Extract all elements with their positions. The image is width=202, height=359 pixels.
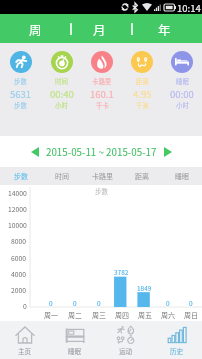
staticText: 0 (23, 301, 27, 311)
staticText: 8000 (11, 236, 27, 246)
staticText: 1849 (137, 283, 152, 292)
button[interactable]: 历史 (151, 321, 202, 359)
staticText: 年 (158, 20, 171, 38)
staticText: 160.1 (90, 87, 114, 101)
staticText: 卡路里 (92, 77, 112, 86)
staticText: 睡眠 (175, 171, 189, 181)
staticText: 6000 (11, 253, 27, 263)
staticText: 小时 (55, 101, 68, 110)
staticText: 10:14 (177, 1, 201, 15)
staticText: 步数 (14, 101, 27, 110)
staticText: 00:00 (170, 87, 194, 101)
staticText: 千卡 (96, 101, 109, 110)
staticText: 00:40 (50, 87, 74, 101)
staticText: 距离 (136, 77, 149, 86)
staticText: 距离 (135, 171, 149, 181)
staticText: 周日 (184, 310, 198, 320)
staticText: 周六 (161, 310, 175, 320)
staticText: 4000 (11, 269, 27, 279)
button[interactable]: 时间 (41, 43, 82, 136)
staticText: 时间 (55, 171, 69, 181)
button[interactable]: 步数 (0, 167, 41, 185)
button[interactable]: 卡路里 (82, 167, 122, 185)
button[interactable]: 主页 (0, 321, 50, 359)
staticText: 历史 (170, 346, 184, 356)
button[interactable]: 周 (19, 14, 51, 43)
staticText: 睡眠 (176, 77, 189, 86)
staticText: 4.95 (133, 87, 152, 101)
staticText: 周一 (44, 310, 58, 320)
staticText: 14000 (8, 188, 27, 198)
staticText: 周四 (115, 310, 129, 320)
staticText: 睡眠 (68, 346, 82, 356)
staticText: 小时 (176, 101, 189, 110)
staticText: 周 (29, 20, 42, 38)
button[interactable]: 月 (83, 14, 115, 43)
staticText: 时间 (55, 77, 68, 86)
staticText: 2015-05-11 ~ 2015-05-17 (46, 145, 157, 159)
staticText: 步数 (95, 186, 108, 195)
button[interactable]: Previous week (28, 145, 42, 159)
button[interactable]: 睡眠 (162, 43, 202, 136)
staticText: 5631 (10, 87, 32, 101)
button[interactable]: 睡眠 (162, 167, 202, 185)
staticText: 周三 (92, 310, 106, 320)
staticText: 周二 (68, 310, 82, 320)
button[interactable]: Next week (161, 145, 175, 159)
staticText: 0 (73, 298, 77, 307)
button[interactable]: 睡眠 (50, 321, 100, 359)
button[interactable]: 距离 (122, 167, 162, 185)
staticText: 步数 (14, 171, 28, 181)
staticText: 0 (97, 298, 101, 307)
staticText: 卡路里 (92, 171, 113, 181)
staticText: 2000 (11, 285, 27, 295)
button[interactable]: 时间 (41, 167, 82, 185)
staticText: 千米 (136, 101, 149, 110)
button[interactable]: 年 (148, 14, 180, 43)
button[interactable]: 卡路里 (82, 43, 122, 136)
staticText: 12000 (8, 204, 27, 214)
button[interactable]: 距离 (122, 43, 162, 136)
staticText: 0 (189, 298, 193, 307)
staticText: 周五 (138, 310, 152, 320)
staticText: 0 (166, 298, 170, 307)
staticText: 步数 (14, 77, 27, 86)
staticText: 10000 (8, 220, 27, 230)
staticText: 3782 (114, 267, 129, 276)
staticText: 0 (49, 298, 53, 307)
button[interactable]: 运动 (100, 321, 151, 359)
staticText: 运动 (119, 346, 133, 356)
button[interactable]: 步数 (0, 43, 41, 136)
staticText: 主页 (18, 346, 32, 356)
staticText: 月 (93, 20, 106, 38)
